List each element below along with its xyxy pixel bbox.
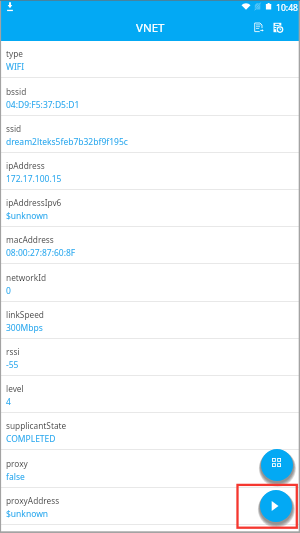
staticText: 4 [6, 396, 11, 408]
staticText: macAddress [6, 234, 54, 245]
staticText: $unknown [6, 210, 49, 222]
button[interactable]: level [0, 376, 300, 413]
staticText: ipAddressIpv6 [6, 197, 62, 208]
button[interactable]: ipAddress [0, 153, 300, 190]
staticText: rssi [6, 346, 20, 357]
button[interactable]: proxy [0, 451, 300, 488]
staticText: level [6, 383, 24, 394]
staticText: 172.17.100.15 [6, 173, 62, 185]
staticText: 0 [6, 285, 11, 297]
button[interactable]: type [0, 41, 300, 78]
button[interactable]: linkSpeed [0, 302, 300, 339]
button[interactable]: History [269, 19, 287, 37]
staticText: 300Mbps [6, 322, 43, 334]
staticText: dream2lteks5feb7b32bf9f195c [6, 136, 128, 148]
staticText: linkSpeed [6, 309, 44, 320]
staticText: 04:D9:F5:37:D5:D1 [6, 99, 80, 111]
button[interactable]: macAddress [0, 227, 300, 264]
button[interactable]: proxyAddress [0, 488, 300, 525]
button[interactable]: networkId [0, 265, 300, 302]
staticText: 10:48 [276, 2, 298, 14]
staticText: $unknown [6, 508, 49, 520]
staticText: proxy [6, 458, 28, 469]
staticText: WIFI [6, 61, 25, 73]
button[interactable]: rssi [0, 339, 300, 376]
staticText: proxyAddress [6, 495, 60, 506]
staticText: supplicantState [6, 420, 67, 431]
button[interactable]: supplicantState [0, 413, 300, 450]
button[interactable]: ssid [0, 116, 300, 153]
button[interactable]: bssid [0, 79, 300, 116]
staticText: 08:00:27:87:60:8F [6, 247, 76, 259]
button[interactable]: Play [260, 490, 292, 522]
staticText: -55 [6, 359, 19, 371]
button[interactable]: Apps [261, 449, 293, 481]
staticText: ipAddress [6, 160, 45, 171]
staticText: type [6, 48, 24, 59]
staticText: false [6, 471, 25, 483]
staticText: ssid [6, 123, 22, 134]
staticText: bssid [6, 86, 27, 97]
button[interactable]: ipAddressIpv6 [0, 190, 300, 227]
staticText: VNET [136, 20, 165, 36]
staticText: networkId [6, 272, 47, 283]
button[interactable]: Export log [250, 19, 268, 37]
staticText: COMPLETED [6, 433, 56, 445]
